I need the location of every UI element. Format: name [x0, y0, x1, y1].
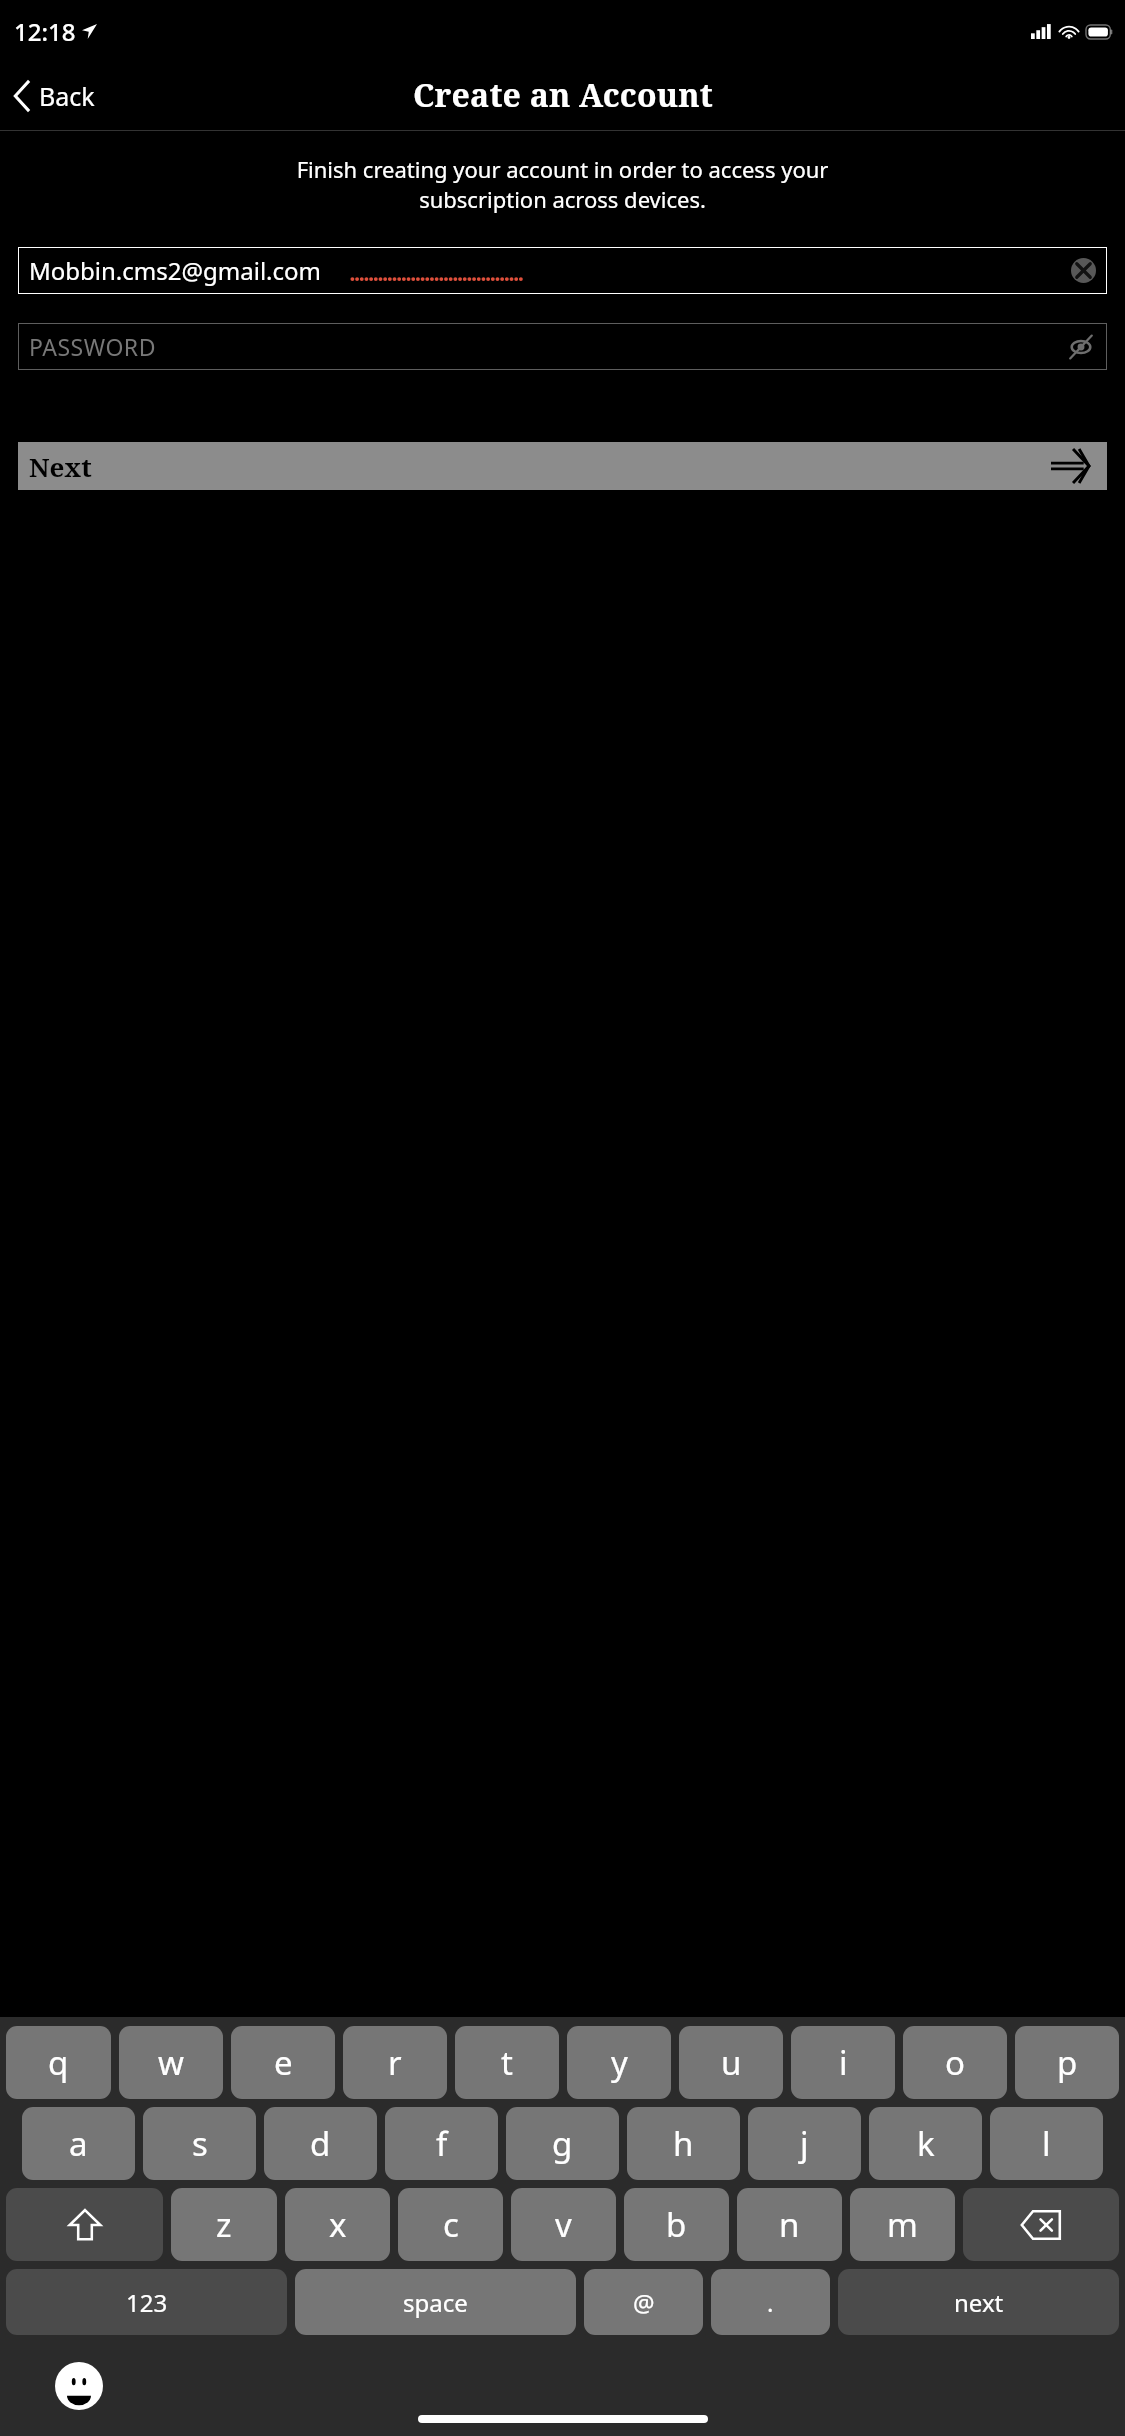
button[interactable]: PASSWORD — [18, 323, 1107, 370]
button[interactable]: a — [22, 2107, 135, 2180]
button[interactable]: x — [285, 2188, 390, 2261]
staticText: Finish creating your account in order to… — [18, 154, 1107, 214]
staticText: Mobbin.cms2@gmail.com — [29, 254, 321, 287]
staticText: c — [443, 2202, 459, 2247]
button[interactable]: Shift — [6, 2188, 163, 2261]
button[interactable]: c — [398, 2188, 503, 2261]
button[interactable]: 123 — [6, 2269, 287, 2335]
staticText: 123 — [126, 2286, 168, 2319]
button[interactable]: s — [143, 2107, 256, 2180]
button[interactable]: j — [748, 2107, 861, 2180]
button[interactable]: l — [990, 2107, 1103, 2180]
staticText: space — [403, 2286, 468, 2319]
button[interactable]: Clear text — [1071, 258, 1096, 283]
button[interactable]: o — [903, 2026, 1007, 2099]
staticText: n — [779, 2202, 800, 2247]
staticText: o — [945, 2040, 965, 2085]
staticText: a — [69, 2121, 88, 2166]
staticText: Create an Account — [413, 73, 713, 117]
staticText: m — [887, 2202, 918, 2247]
staticText: Next — [29, 449, 92, 484]
staticText: s — [192, 2121, 208, 2166]
staticText: . — [767, 2286, 774, 2319]
button[interactable]: m — [850, 2188, 955, 2261]
button[interactable]: y — [567, 2026, 671, 2099]
button[interactable]: u — [679, 2026, 783, 2099]
button[interactable]: i — [791, 2026, 895, 2099]
staticText: i — [839, 2040, 848, 2085]
button[interactable]: next — [838, 2269, 1119, 2335]
button[interactable]: z — [171, 2188, 277, 2261]
button[interactable]: space — [295, 2269, 576, 2335]
staticText: x — [329, 2202, 347, 2247]
staticText: r — [388, 2040, 402, 2085]
button[interactable]: e — [231, 2026, 335, 2099]
staticText: w — [158, 2040, 184, 2085]
staticText: next — [954, 2286, 1004, 2319]
staticText: y — [611, 2040, 628, 2085]
button[interactable]: Back — [0, 73, 109, 119]
staticText: @ — [633, 2286, 655, 2319]
staticText: q — [48, 2040, 69, 2085]
staticText: Back — [39, 79, 95, 113]
staticText: g — [552, 2121, 573, 2166]
button[interactable]: p — [1015, 2026, 1119, 2099]
staticText: t — [501, 2040, 513, 2085]
staticText: e — [274, 2040, 293, 2085]
button[interactable]: Next — [18, 442, 1107, 490]
button[interactable]: @ — [584, 2269, 703, 2335]
staticText: z — [216, 2202, 232, 2247]
button[interactable]: t — [455, 2026, 559, 2099]
staticText: l — [1042, 2121, 1051, 2166]
button[interactable]: q — [6, 2026, 111, 2099]
staticText: p — [1057, 2040, 1078, 2085]
staticText: b — [666, 2202, 687, 2247]
staticText: 12:18 — [14, 15, 76, 48]
button[interactable]: Show password — [1066, 332, 1096, 362]
staticText: d — [310, 2121, 331, 2166]
button[interactable]: v — [511, 2188, 616, 2261]
button[interactable]: g — [506, 2107, 619, 2180]
button[interactable]: k — [869, 2107, 982, 2180]
button[interactable]: n — [737, 2188, 842, 2261]
staticText: k — [917, 2121, 935, 2166]
staticText: h — [673, 2121, 694, 2166]
button[interactable]: Emoji — [55, 2362, 103, 2410]
button[interactable]: r — [343, 2026, 447, 2099]
button[interactable]: d — [264, 2107, 377, 2180]
button[interactable]: f — [385, 2107, 498, 2180]
button[interactable]: h — [627, 2107, 740, 2180]
staticText: v — [555, 2202, 572, 2247]
button[interactable]: b — [624, 2188, 729, 2261]
staticText: f — [436, 2121, 448, 2166]
staticText: j — [800, 2121, 809, 2166]
button[interactable]: w — [119, 2026, 223, 2099]
staticText: u — [721, 2040, 742, 2085]
button[interactable]: Backspace — [963, 2188, 1119, 2261]
button[interactable]: . — [711, 2269, 830, 2335]
staticText: PASSWORD — [29, 331, 156, 362]
button[interactable]: Mobbin.cms2@gmail.com — [18, 247, 1107, 294]
